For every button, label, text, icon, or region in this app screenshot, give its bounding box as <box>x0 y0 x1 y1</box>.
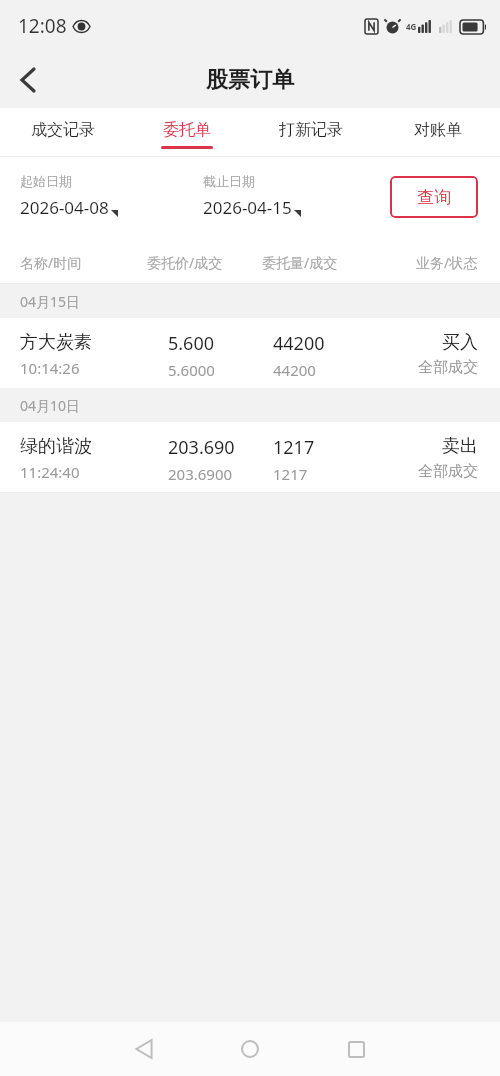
staticText: 203.690 <box>168 435 235 460</box>
button[interactable]: 查询 <box>390 176 478 218</box>
staticText: 44200 <box>273 360 316 380</box>
staticText: 04月15日 <box>20 292 81 311</box>
button[interactable]: Back <box>107 1022 181 1076</box>
staticText: 5.6000 <box>168 360 215 380</box>
button[interactable]: Back <box>0 52 56 108</box>
staticText: 44200 <box>273 331 325 356</box>
staticText: 4G <box>406 21 417 32</box>
staticText: 买入 <box>442 331 478 354</box>
button[interactable]: 成交记录 <box>11 108 115 157</box>
button[interactable]: 对账单 <box>386 108 490 157</box>
button[interactable]: 打新记录 <box>259 108 363 157</box>
staticText: 12:08 <box>18 13 67 39</box>
staticText: 名称/时间 <box>20 253 82 272</box>
staticText: 2026-04-08 <box>20 196 109 219</box>
staticText: 2026-04-15 <box>203 196 292 219</box>
staticText: 卖出 <box>442 435 478 458</box>
button[interactable]: 绿的谐波 <box>0 422 500 492</box>
staticText: 方大炭素 <box>20 331 92 354</box>
button[interactable]: 方大炭素 <box>0 318 500 388</box>
staticText: 业务/状态 <box>416 253 478 272</box>
staticText: 全部成交 <box>418 358 478 377</box>
staticText: 对账单 <box>414 120 462 140</box>
staticText: 委托量/成交 <box>262 253 338 272</box>
staticText: 203.6900 <box>168 464 233 484</box>
staticText: 全部成交 <box>418 462 478 481</box>
staticText: 绿的谐波 <box>20 435 92 458</box>
staticText: 起始日期 <box>20 173 72 189</box>
staticText: 04月10日 <box>20 396 81 415</box>
staticText: 截止日期 <box>203 173 255 189</box>
staticText: 1217 <box>273 464 308 484</box>
staticText: 11:24:40 <box>20 462 80 482</box>
staticText: 委托价/成交 <box>147 253 223 272</box>
staticText: 股票订单 <box>206 66 294 94</box>
button[interactable]: Home <box>213 1022 287 1076</box>
button[interactable]: 起始日期 <box>20 173 118 219</box>
staticText: 5.600 <box>168 331 215 356</box>
button[interactable]: 委托单 <box>135 108 239 157</box>
staticText: 成交记录 <box>31 120 95 140</box>
button[interactable]: Recent apps <box>319 1022 393 1076</box>
staticText: 打新记录 <box>279 120 343 140</box>
staticText: 10:14:26 <box>20 358 80 378</box>
staticText: 1217 <box>273 435 315 460</box>
staticText: 查询 <box>417 187 451 208</box>
button[interactable]: 截止日期 <box>203 173 301 219</box>
staticText: 委托单 <box>163 120 211 140</box>
